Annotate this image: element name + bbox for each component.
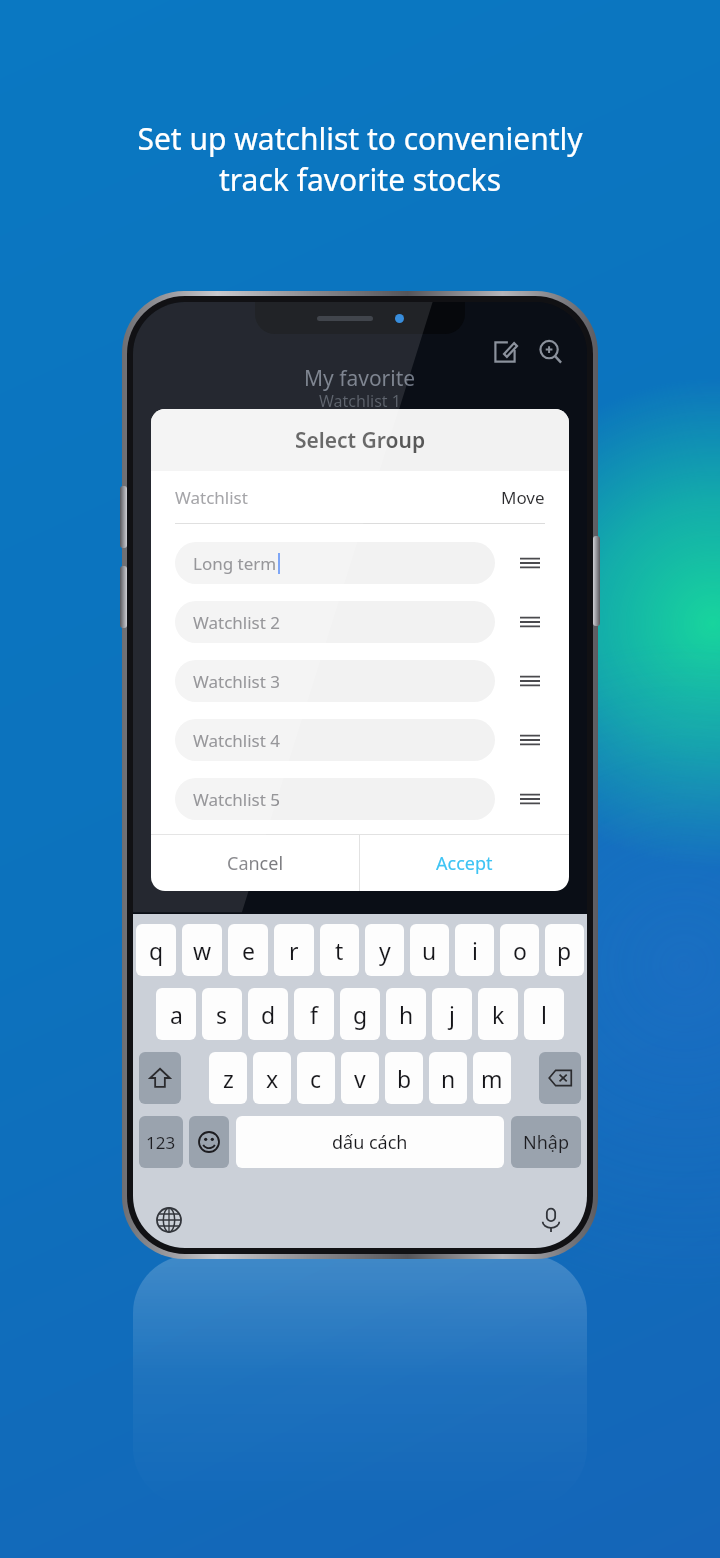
button[interactable]: i: [455, 924, 494, 976]
staticText: a: [170, 999, 183, 1030]
staticText: k: [492, 999, 505, 1030]
button[interactable]: z: [209, 1052, 247, 1104]
staticText: Watchlist 5: [193, 788, 281, 811]
button[interactable]: Watchlist 2: [175, 592, 545, 651]
staticText: j: [449, 999, 455, 1030]
staticText: y: [379, 935, 391, 966]
button[interactable]: Edit watchlist: [485, 332, 525, 372]
staticText: i: [472, 935, 478, 966]
staticText: 123: [146, 1131, 176, 1154]
button[interactable]: k: [478, 988, 518, 1040]
staticText: Long term: [193, 552, 277, 575]
staticText: l: [541, 999, 547, 1030]
staticText: s: [216, 999, 228, 1030]
button[interactable]: x: [253, 1052, 291, 1104]
button[interactable]: m: [473, 1052, 511, 1104]
button[interactable]: Move: [501, 486, 545, 509]
staticText: Set up watchlist to conveniently track f…: [137, 118, 583, 200]
staticText: h: [399, 999, 414, 1030]
button[interactable]: s: [202, 988, 242, 1040]
staticText: p: [557, 935, 572, 966]
staticText: r: [289, 935, 299, 966]
staticText: f: [310, 999, 318, 1030]
button[interactable]: Watchlist 4: [175, 710, 545, 769]
button[interactable]: Reorder Watchlist 3: [515, 666, 545, 696]
staticText: d: [261, 999, 276, 1030]
button[interactable]: j: [432, 988, 472, 1040]
button[interactable]: Nhập: [511, 1116, 581, 1168]
staticText: x: [266, 1063, 279, 1094]
button[interactable]: p: [545, 924, 584, 976]
button[interactable]: Dictation: [531, 1200, 571, 1240]
staticText: Watchlist 3: [193, 670, 281, 693]
button[interactable]: Reorder Watchlist 2: [515, 607, 545, 637]
button[interactable]: h: [386, 988, 426, 1040]
staticText: Watchlist 1: [319, 390, 401, 412]
staticText: z: [223, 1063, 234, 1094]
staticText: Watchlist: [175, 486, 248, 509]
staticText: Watchlist 2: [193, 611, 281, 634]
button[interactable]: q: [136, 924, 176, 976]
button[interactable]: r: [274, 924, 314, 976]
button[interactable]: e: [228, 924, 268, 976]
button[interactable]: Reorder Watchlist 5: [515, 784, 545, 814]
button[interactable]: u: [410, 924, 449, 976]
staticText: t: [335, 935, 344, 966]
button[interactable]: Change keyboard: [149, 1200, 189, 1240]
button[interactable]: Shift: [139, 1052, 181, 1104]
staticText: u: [422, 935, 437, 966]
staticText: n: [441, 1063, 456, 1094]
staticText: b: [397, 1063, 412, 1094]
staticText: q: [149, 935, 164, 966]
button[interactable]: c: [297, 1052, 335, 1104]
button[interactable]: y: [365, 924, 404, 976]
button[interactable]: Watchlist 3: [175, 651, 545, 710]
button[interactable]: v: [341, 1052, 379, 1104]
button[interactable]: f: [294, 988, 334, 1040]
button[interactable]: b: [385, 1052, 423, 1104]
button[interactable]: Add symbol: [531, 332, 571, 372]
button[interactable]: o: [500, 924, 539, 976]
staticText: c: [310, 1063, 322, 1094]
button[interactable]: a: [156, 988, 196, 1040]
button[interactable]: Accept: [360, 835, 569, 891]
button[interactable]: w: [182, 924, 222, 976]
button[interactable]: g: [340, 988, 380, 1040]
button[interactable]: t: [320, 924, 359, 976]
button[interactable]: Emoji: [189, 1116, 229, 1168]
button[interactable]: l: [524, 988, 564, 1040]
staticText: Nhập: [523, 1130, 569, 1155]
staticText: m: [481, 1063, 503, 1094]
staticText: e: [242, 935, 255, 966]
button[interactable]: Cancel: [151, 835, 359, 891]
button[interactable]: 123: [139, 1116, 183, 1168]
staticText: Move: [501, 486, 545, 509]
staticText: v: [354, 1063, 366, 1094]
button[interactable]: Reorder Watchlist 4: [515, 725, 545, 755]
button[interactable]: Watchlist 5: [175, 769, 545, 828]
staticText: dấu cách: [332, 1130, 408, 1155]
staticText: o: [513, 935, 527, 966]
staticText: g: [353, 999, 368, 1030]
button[interactable]: Long term: [175, 533, 545, 592]
button[interactable]: n: [429, 1052, 467, 1104]
staticText: My favorite: [304, 364, 416, 393]
button[interactable]: dấu cách: [236, 1116, 504, 1168]
staticText: Watchlist 4: [193, 729, 281, 752]
button[interactable]: Reorder Long term: [515, 548, 545, 578]
staticText: Select Group: [295, 426, 426, 455]
button[interactable]: d: [248, 988, 288, 1040]
staticText: Cancel: [227, 851, 284, 876]
staticText: Accept: [436, 851, 493, 876]
staticText: w: [193, 935, 212, 966]
button[interactable]: Backspace: [539, 1052, 581, 1104]
